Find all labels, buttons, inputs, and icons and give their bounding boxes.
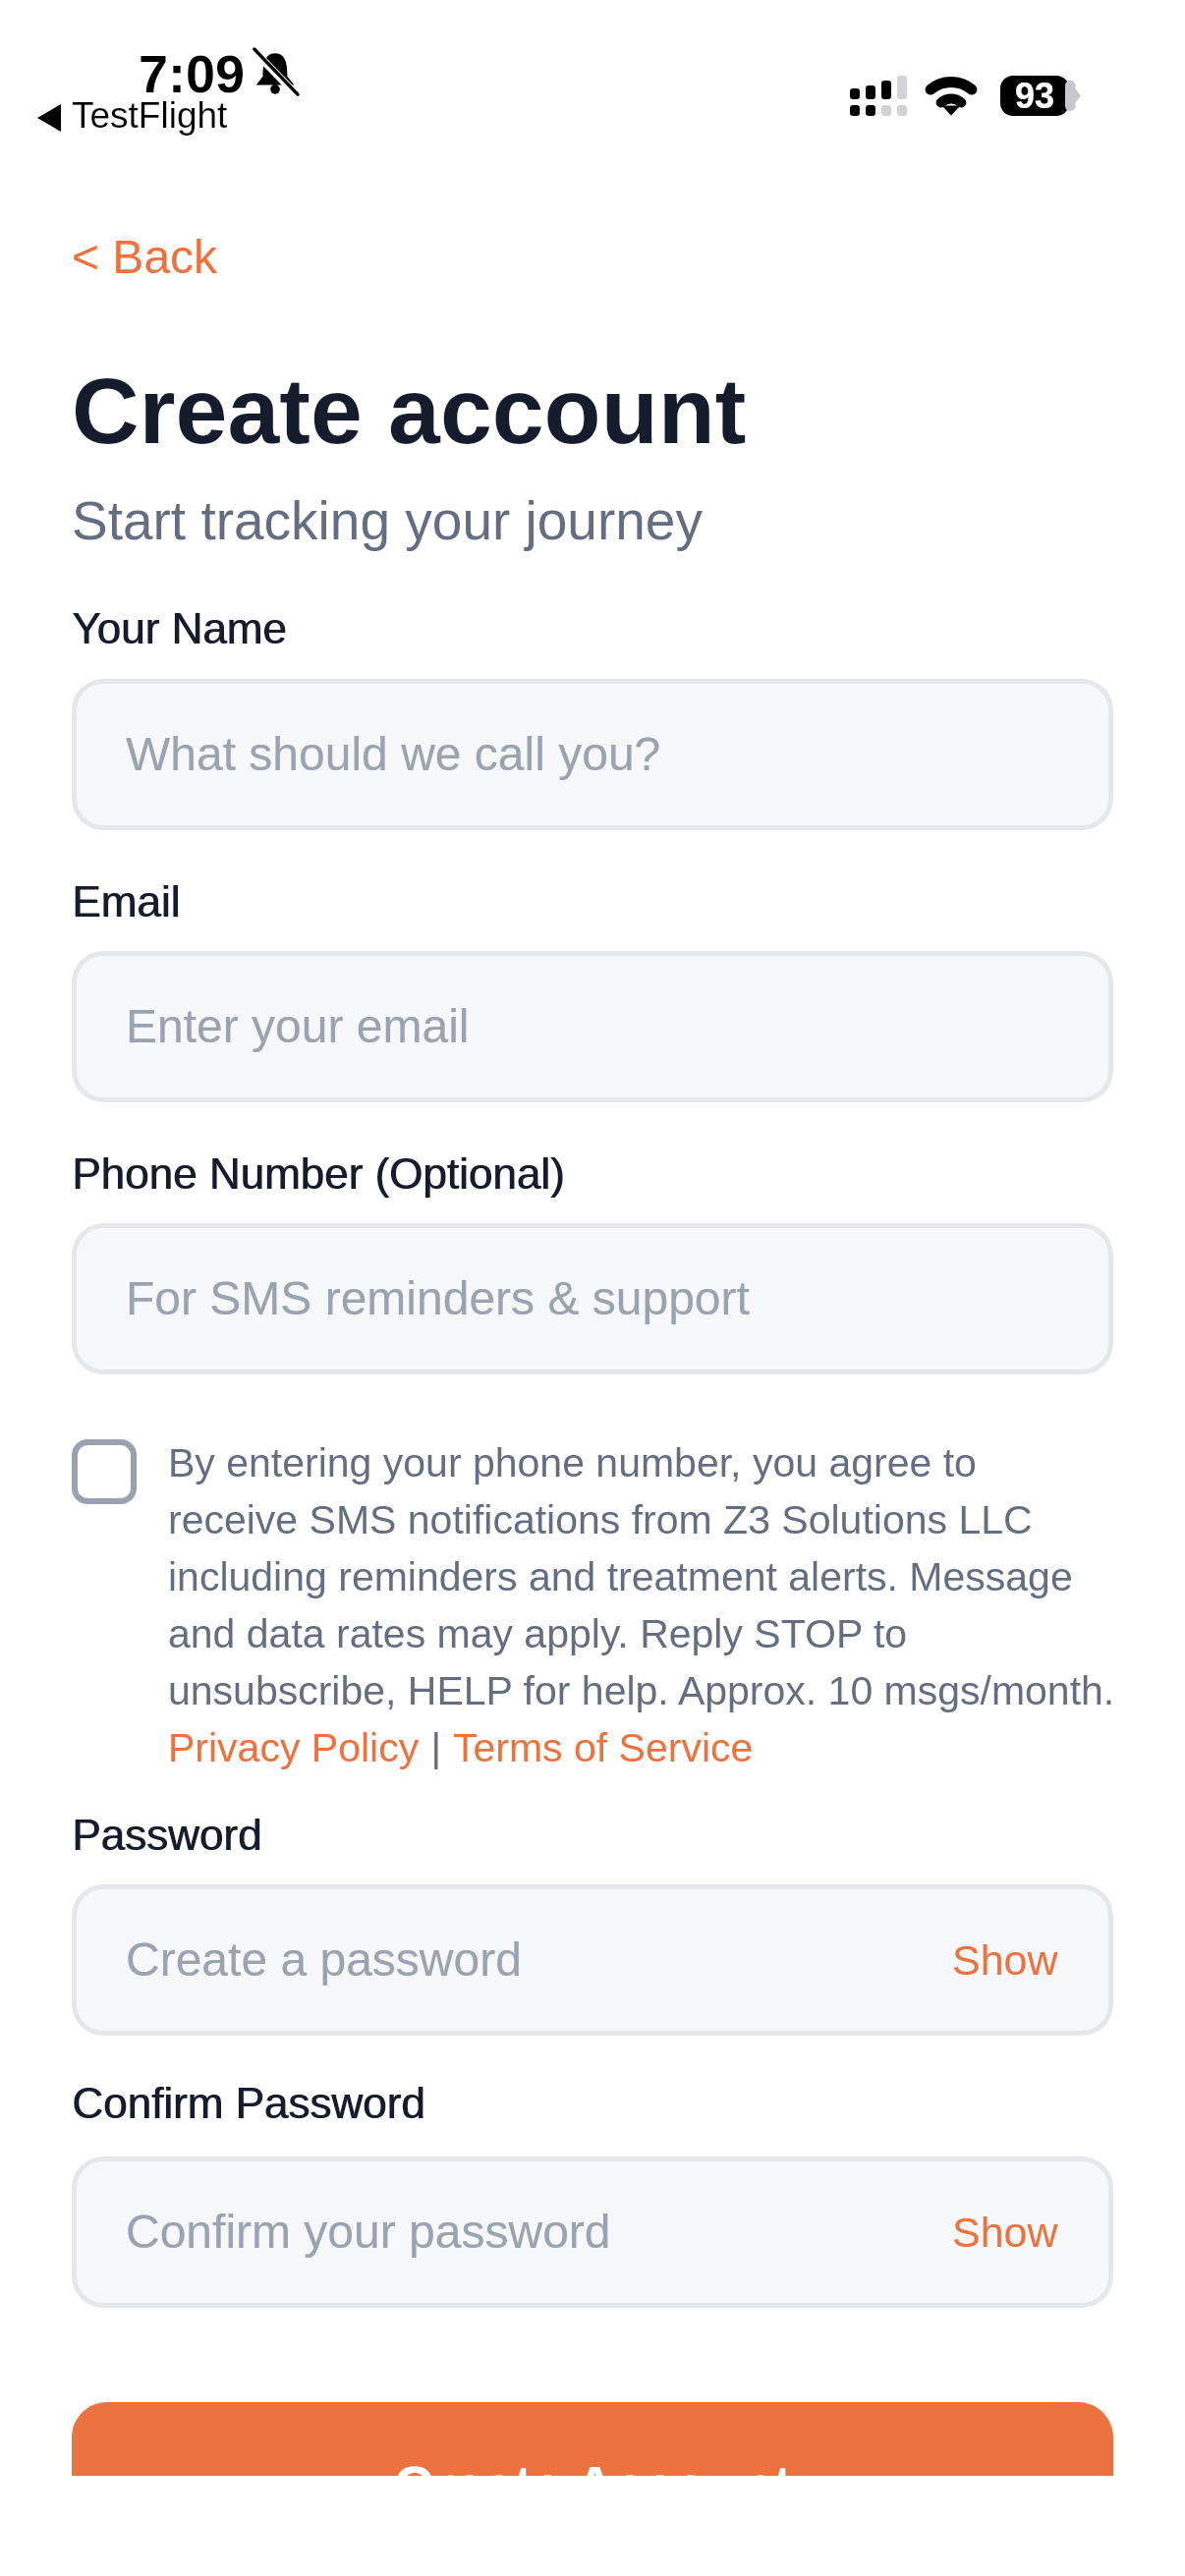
staticText: Email (73, 877, 182, 925)
staticText: Your Name (72, 604, 287, 652)
staticText: Show (952, 2209, 1058, 2256)
staticText: | (420, 1725, 453, 1770)
button[interactable]: What should we call you? (72, 679, 1113, 830)
staticText: TestFlight (72, 95, 228, 136)
button[interactable]: Privacy Policy (168, 1725, 420, 1770)
staticText: Terms of Service (453, 1725, 754, 1770)
staticText: 93 (1015, 76, 1055, 115)
staticText: Create a password (126, 1933, 522, 1987)
button[interactable]: Back (62, 223, 228, 292)
staticText: receive SMS notifications from Z3 Soluti… (168, 1497, 1033, 1542)
staticText: For SMS reminders & support (126, 1272, 750, 1325)
staticText: including reminders and treatment alerts… (168, 1554, 1073, 1599)
staticText: Phone Number (Optional) (72, 1149, 565, 1198)
staticText: By entering your phone number, you agree… (168, 1440, 977, 1485)
button[interactable]: Show password (952, 1936, 1058, 1984)
staticText: Your Name (73, 604, 288, 652)
staticText: Confirm your password (126, 2206, 611, 2259)
button[interactable]: Terms of Service (453, 1725, 754, 1770)
staticText: Privacy Policy (168, 1725, 420, 1770)
staticText: unsubscribe, HELP for help. Approx. 10 m… (168, 1668, 1115, 1713)
staticText: Start tracking your journey (72, 490, 703, 550)
button[interactable]: For SMS reminders & support (72, 1223, 1113, 1374)
staticText: Create Account (394, 2455, 792, 2476)
button[interactable]: SMS consent checkbox (72, 1439, 137, 1504)
button[interactable]: Create Account (72, 2402, 1113, 2476)
staticText: Phone Number (Optional) (73, 1149, 566, 1198)
staticText: Create account (72, 359, 747, 463)
staticText: Password (72, 1811, 262, 1859)
staticText: and data rates may apply. Reply STOP to (168, 1611, 908, 1656)
button[interactable]: Enter your email (72, 951, 1113, 1102)
staticText: 7:09 (139, 44, 246, 103)
staticText: Enter your email (126, 1000, 470, 1053)
button[interactable]: Confirm your password (72, 2156, 1113, 2308)
staticText: Confirm Password (72, 2079, 425, 2127)
staticText: < Back (72, 231, 218, 284)
staticText: What should we call you? (126, 728, 661, 781)
button[interactable]: Create a password (72, 1884, 1113, 2036)
staticText: Password (73, 1811, 263, 1859)
staticText: Confirm Password (73, 2079, 426, 2127)
button[interactable]: Show password (952, 2209, 1058, 2256)
staticText: Email (72, 877, 181, 925)
staticText: Show (952, 1936, 1058, 1984)
